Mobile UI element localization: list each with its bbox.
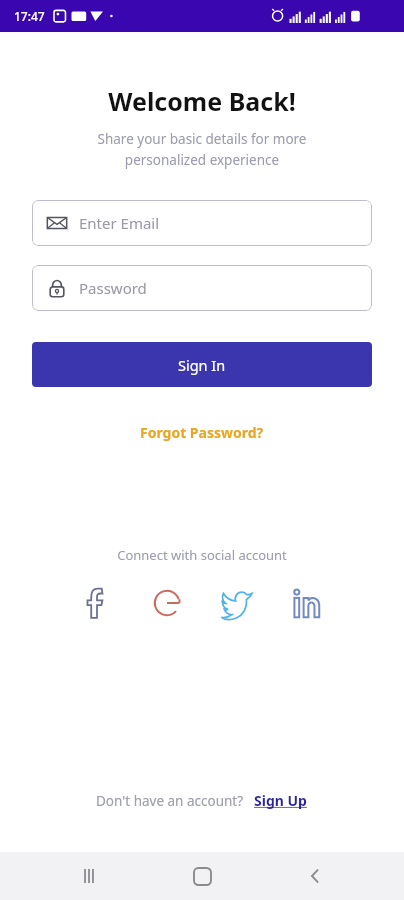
button[interactable]: Sign Up [252,789,309,812]
button[interactable]: Home [178,852,226,900]
button[interactable]: Enter Email [32,200,372,246]
staticText: Sign Up [254,791,307,810]
button[interactable]: Google [144,580,190,626]
staticText: Enter Email [79,213,160,233]
staticText: Password [79,278,147,298]
staticText: Don't have an account? [96,792,244,810]
button[interactable]: Twitter [214,580,260,626]
staticText: Forgot Password? [140,423,264,442]
staticText: 17:47 [14,8,45,24]
button[interactable]: Recents [65,852,113,900]
staticText: Share your basic details for more person… [0,130,404,169]
button[interactable]: Sign In [32,342,372,387]
staticText: Welcome Back! [0,84,404,118]
staticText: Connect with social account [0,546,404,564]
button[interactable]: LinkedIn [284,580,330,626]
button[interactable]: Back [291,852,339,900]
button[interactable]: Password [32,265,372,311]
button[interactable]: Facebook [74,580,120,626]
staticText: Sign In [178,355,226,375]
button[interactable]: Forgot Password? [130,419,274,446]
